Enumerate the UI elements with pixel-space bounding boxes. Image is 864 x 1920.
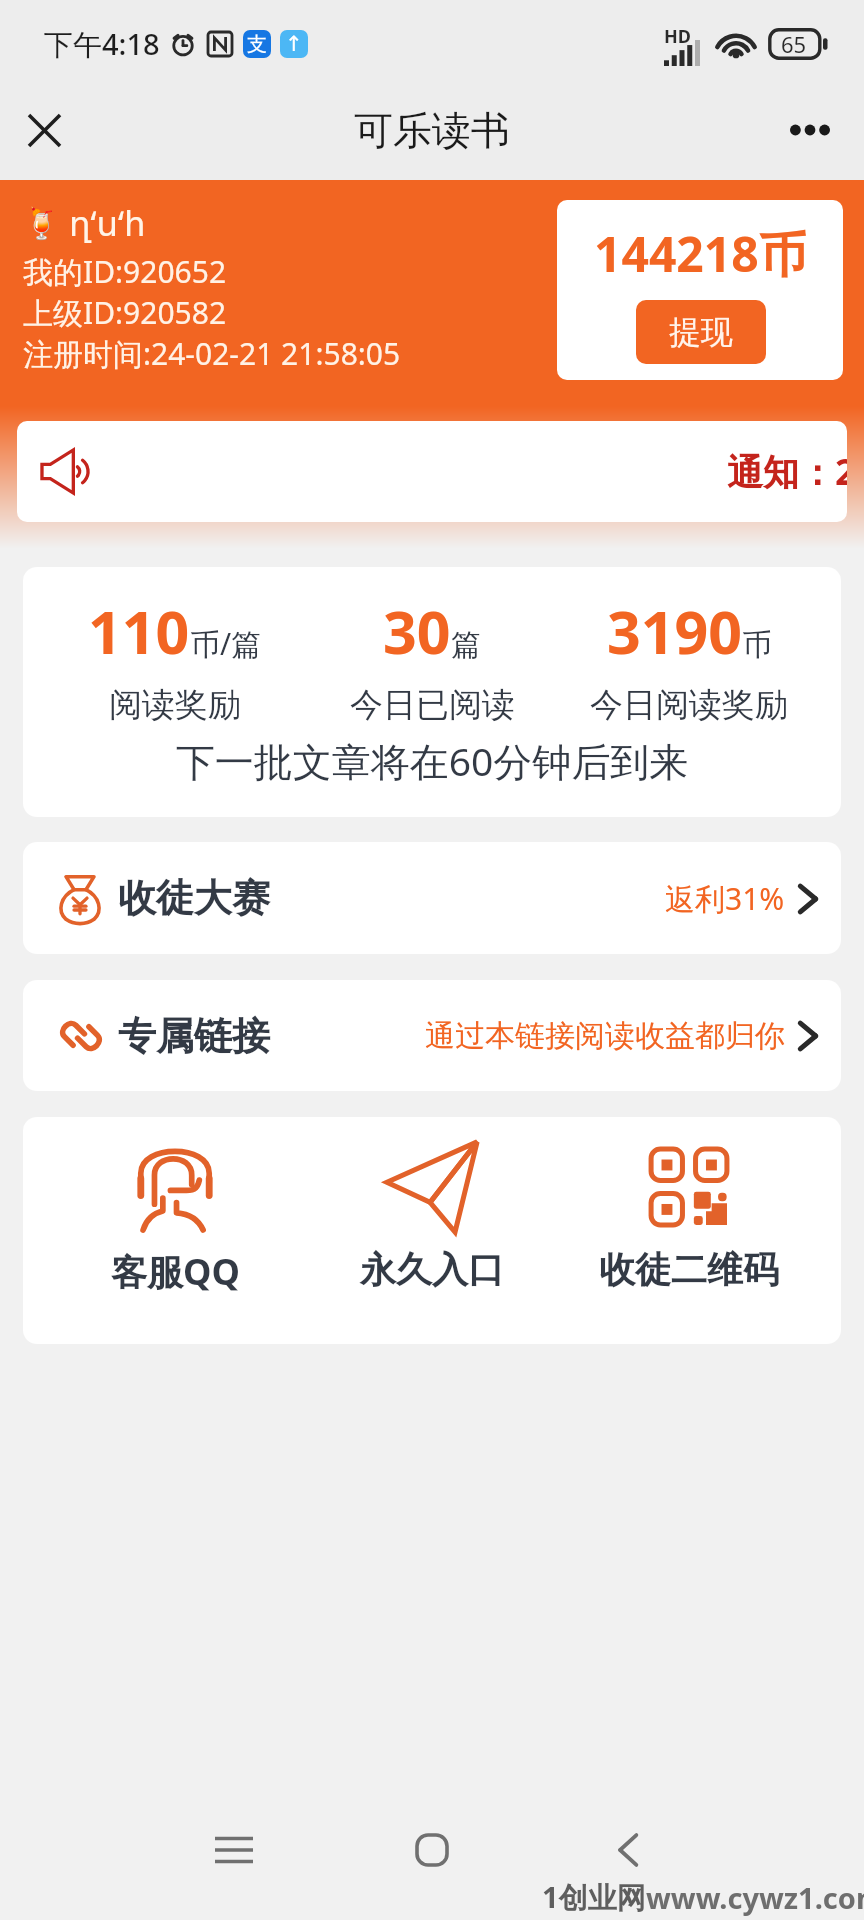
staticText: 今日已阅读 [350,684,515,726]
button[interactable]: 客服QQ [75,1139,275,1296]
button[interactable]: Back [586,1808,670,1892]
staticText: ղʻսʻհ [69,200,146,246]
staticText: 今日阅读奖励 [590,684,788,726]
staticText: 144218币 [594,221,807,287]
staticText: 我的ID:920652 [23,251,227,292]
staticText: 下一批文章将在60分钟后到来 [23,734,841,787]
button[interactable]: 通知：2 [17,421,847,522]
staticText: 65 [781,29,807,59]
staticText: 专属链接 [118,1012,270,1060]
staticText: HD [664,24,691,49]
staticText: 30 [383,591,451,671]
staticText: 上级ID:920582 [23,292,227,333]
button[interactable]: 收徒二维码 [589,1139,789,1292]
staticText: 篇 [451,626,481,664]
staticText: 收徒大赛 [118,874,270,922]
staticText: 1创业网 [542,1877,646,1917]
staticText: 3190 [607,591,742,671]
staticText: 阅读奖励 [109,684,241,726]
staticText: 永久入口 [360,1247,504,1292]
staticText: ↑ [285,32,303,56]
staticText: www.cywz1.com [646,1878,864,1917]
staticText: 支 [247,32,267,57]
staticText: 客服QQ [111,1247,240,1296]
staticText: 110 [88,591,190,671]
staticText: 通过本链接阅读收益都归你 [425,1017,785,1055]
button[interactable]: 提现 [636,300,766,364]
staticText: 币 [742,626,772,664]
staticText: 收徒二维码 [599,1247,779,1292]
staticText: 注册时间:24-02-21 21:58:05 [23,333,401,374]
staticText: 🍹 [23,206,61,241]
button[interactable]: Close [8,94,80,166]
staticText: 提现 [669,312,733,352]
button[interactable]: 144218币 [557,200,843,380]
staticText: 返利31% [665,878,785,919]
button[interactable]: Recruit contest [23,842,841,954]
button[interactable]: Recents [192,1808,276,1892]
button[interactable]: 永久入口 [332,1139,532,1292]
staticText: 币/篇 [190,623,262,664]
staticText: 通知：2 [727,447,847,496]
button[interactable]: Exclusive link [23,980,841,1091]
button[interactable]: Home [390,1808,474,1892]
staticText: 可乐读书 [354,106,510,155]
button[interactable]: More options [774,94,846,166]
staticText: 下午4:18 [44,24,160,64]
